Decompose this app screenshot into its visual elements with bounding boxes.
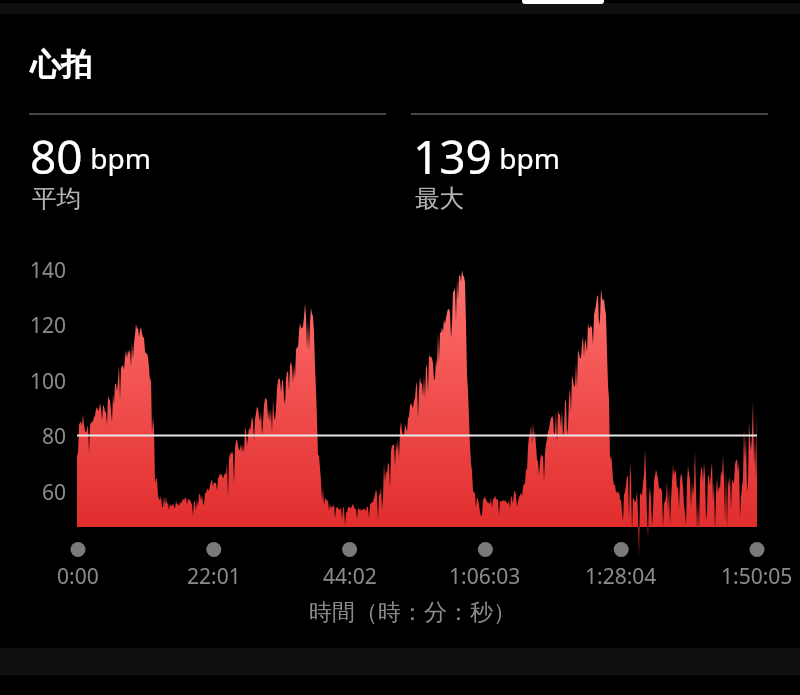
staticText: bpm [492,139,560,177]
staticText: 100 [29,367,66,396]
staticText: 80 [30,125,83,188]
staticText: 80 [41,422,66,451]
staticText: 60 [41,478,66,507]
staticText: 1:50:05 [721,562,793,591]
staticText: 1:06:03 [449,562,521,591]
button[interactable]: 139 [413,125,753,219]
staticText: 44:02 [323,562,377,591]
button[interactable]: 心拍グラフ [14,250,774,540]
staticText: 平均 [32,183,81,214]
staticText: 140 [29,256,66,285]
button[interactable]: 80 [30,125,370,219]
staticText: 最大 [415,183,464,214]
staticText: 1:28:04 [585,562,657,591]
staticText: 120 [29,311,66,340]
staticText: 心拍 [30,45,92,84]
staticText: 22:01 [187,562,241,591]
staticText: 時間（時：分：秒） [309,598,516,627]
staticText: bpm [83,139,151,177]
staticText: 139 [413,125,492,188]
button[interactable]: 心拍 [22,36,222,90]
staticText: 0:00 [57,562,99,591]
